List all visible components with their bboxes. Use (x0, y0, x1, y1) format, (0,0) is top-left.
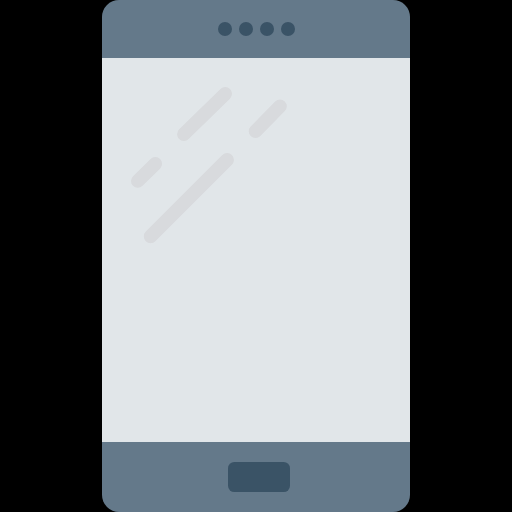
button[interactable]: Smartphone (102, 0, 410, 512)
button[interactable]: Home button (228, 462, 290, 492)
